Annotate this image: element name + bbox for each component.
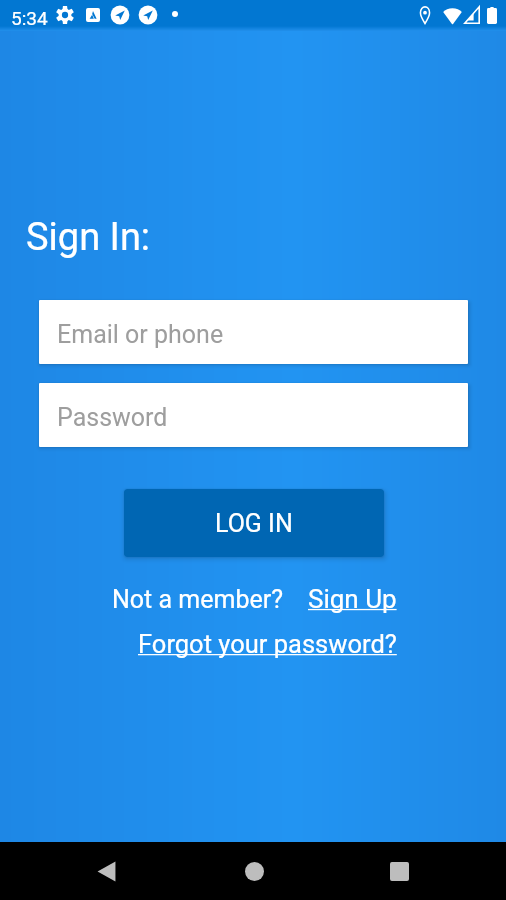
button[interactable]: Password [39,383,468,447]
button[interactable]: LOG IN [124,489,384,557]
staticText: LOG IN [215,509,293,538]
staticText: Email or phone [57,320,224,349]
button[interactable]: Sign Up [308,584,397,614]
staticText: Not a member? [112,585,283,614]
staticText: Password [57,403,168,432]
button[interactable]: Back [58,842,154,900]
button[interactable]: Home [206,842,302,900]
staticText: 5:34 [11,7,48,29]
button[interactable]: Forgot your password? [138,629,397,659]
button[interactable]: Email or phone [39,300,468,364]
staticText: Sign In: [26,215,151,260]
button[interactable]: Recent apps [351,842,447,900]
